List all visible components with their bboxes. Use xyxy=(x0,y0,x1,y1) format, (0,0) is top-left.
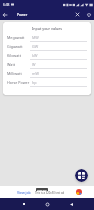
button[interactable]: Recents xyxy=(18,198,30,210)
staticText: Gigawatt xyxy=(7,44,30,49)
button[interactable]: Back xyxy=(0,10,10,20)
staticText: Watt xyxy=(7,62,30,67)
button[interactable]: Favorite xyxy=(83,9,94,20)
staticText: kW xyxy=(32,53,38,58)
button[interactable]: Milliwatt xyxy=(3,69,91,78)
staticText: 6:38 xyxy=(3,3,10,7)
staticText: hp xyxy=(32,80,37,85)
button[interactable]: Horse Power xyxy=(3,78,91,87)
button[interactable]: Watt xyxy=(3,60,91,69)
button[interactable]: Gigawatt xyxy=(3,42,91,51)
staticText: Megawatt xyxy=(7,35,30,40)
staticText: Input your values xyxy=(3,26,91,31)
button[interactable]: View job xyxy=(17,190,31,195)
button[interactable]: Calculator xyxy=(75,169,88,182)
staticText: Horse Power xyxy=(7,80,30,85)
button[interactable]: Back xyxy=(65,198,77,210)
staticText: Milliwatt xyxy=(7,71,30,76)
staticText: Power xyxy=(17,12,28,17)
staticText: This is a 320x50 test ad xyxy=(35,191,65,195)
staticText: Kilowatt xyxy=(7,53,30,58)
button[interactable]: Home xyxy=(41,198,53,210)
staticText: MW xyxy=(32,35,39,40)
staticText: mW xyxy=(32,71,39,76)
staticText: GW xyxy=(32,44,39,49)
button[interactable]: Megawatt xyxy=(3,33,91,42)
staticText: W xyxy=(32,62,36,67)
button[interactable]: Kilowatt xyxy=(3,51,91,60)
staticText: Save job xyxy=(37,188,47,191)
button[interactable]: Clear xyxy=(72,9,83,20)
